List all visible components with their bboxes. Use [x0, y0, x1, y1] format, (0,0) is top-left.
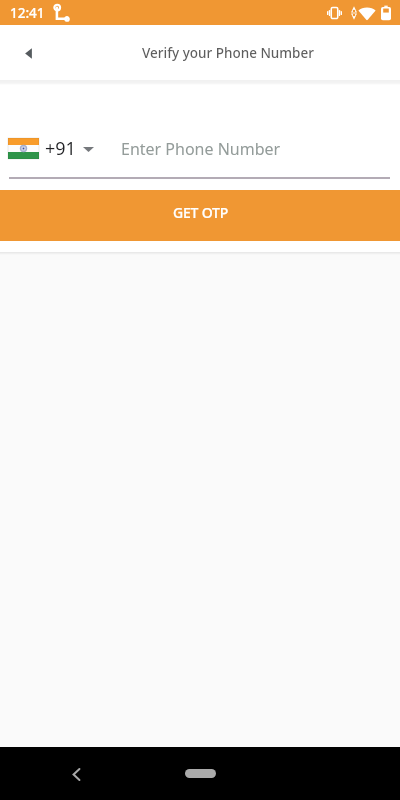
- staticText: 12:41: [10, 4, 45, 22]
- button[interactable]: GET OTP: [0, 190, 400, 241]
- button[interactable]: Back: [62, 760, 90, 788]
- staticText: Enter Phone Number: [121, 138, 281, 160]
- staticText: Verify your Phone Number: [142, 44, 314, 62]
- staticText: +91: [45, 136, 76, 161]
- button[interactable]: +91: [8, 136, 94, 161]
- staticText: GET OTP: [173, 203, 229, 222]
- button[interactable]: Back: [14, 39, 42, 67]
- button[interactable]: Home: [185, 769, 216, 778]
